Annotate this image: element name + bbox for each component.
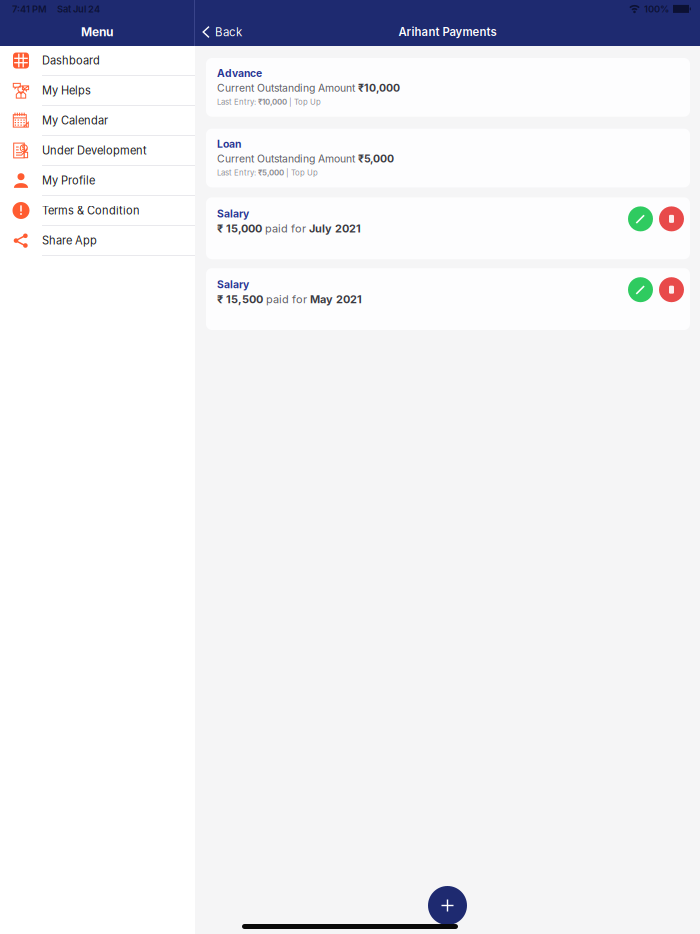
staticText: My Profile [42,174,95,187]
button[interactable]: Loan [206,129,690,187]
staticText: Loan [217,138,241,150]
staticText: May 2021 [310,293,362,306]
staticText: Last Entry: [217,168,258,177]
staticText: ₹5,000 [358,152,394,165]
staticText: ₹10,000 [358,82,400,94]
staticText: Dashboard [42,54,100,67]
button[interactable]: Advance [206,58,690,117]
staticText: Back [215,25,242,39]
staticText: Sat Jul 24 [57,3,100,15]
staticText: Current Outstanding Amount [217,82,358,94]
button[interactable]: Back [195,18,250,46]
button[interactable]: Edit [628,206,653,231]
staticText: July 2021 [309,222,361,235]
staticText: My Calendar [42,114,108,127]
staticText: Share App [42,234,97,247]
button[interactable]: My Profile [0,166,195,196]
button[interactable]: My Helps [0,76,195,106]
staticText: | Top Up [284,168,318,177]
button[interactable]: Add payment [428,886,467,925]
staticText: Arihant Payments [398,25,496,39]
staticText: Salary [217,207,249,220]
staticText: My Helps [42,84,91,97]
staticText: ₹ 15,500 [217,293,266,306]
button[interactable]: Share App [0,226,195,256]
staticText: ₹10,000 [258,97,287,107]
button[interactable]: Dashboard [0,46,195,76]
button[interactable]: Terms & Condition [0,196,195,226]
staticText: Menu [81,25,113,39]
button[interactable]: Delete [659,206,684,231]
staticText: 7:41 PM [12,3,47,15]
button[interactable]: Salary [206,197,690,259]
staticText: $ [22,145,26,152]
staticText: Advance [217,67,262,80]
button[interactable]: Delete [659,277,684,302]
staticText: | Top Up [287,97,321,107]
staticText: paid for [266,293,310,306]
staticText: paid for [265,222,309,235]
staticText: 100% [644,3,669,15]
staticText: ₹5,000 [258,168,284,177]
button[interactable]: Salary [206,268,690,330]
staticText: Last Entry: [217,97,258,107]
button[interactable]: $ [0,136,195,166]
button[interactable]: My Calendar [0,106,195,136]
staticText: Terms & Condition [42,204,140,217]
staticText: ₹ 15,000 [217,222,265,235]
button[interactable]: Edit [628,277,653,302]
staticText: Current Outstanding Amount [217,152,358,165]
staticText: Salary [217,278,249,291]
staticText: Under Development [42,144,147,157]
